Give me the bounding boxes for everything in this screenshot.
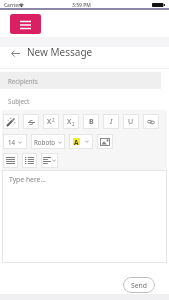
staticText: Subject [8, 97, 30, 105]
staticText: 14 [8, 138, 16, 146]
staticText: Send [131, 281, 147, 290]
staticText: 2 [72, 121, 75, 127]
button[interactable]: Subject [0, 93, 161, 108]
staticText: S [29, 117, 34, 127]
button[interactable]: Type here... [2, 170, 167, 263]
staticText: Type here... [9, 175, 46, 184]
staticText: X [47, 117, 52, 127]
staticText: Carrier [4, 2, 21, 9]
button[interactable]: Link [143, 114, 159, 129]
staticText: U [128, 117, 134, 127]
button[interactable]: Bold [83, 114, 99, 129]
staticText: 3:59 PM [72, 2, 91, 9]
button[interactable]: Underline [123, 114, 139, 129]
button[interactable]: Strikethrough [23, 114, 39, 129]
staticText: Recipients [8, 77, 38, 85]
button[interactable]: Superscript [43, 114, 59, 129]
staticText: Roboto [34, 138, 56, 146]
button[interactable]: Send [123, 277, 155, 293]
button[interactable]: Numbered list [22, 153, 37, 168]
staticText: I [110, 117, 113, 127]
button[interactable]: Insert image [97, 134, 113, 149]
button[interactable]: Italic [103, 114, 119, 129]
staticText: 2 [52, 117, 55, 123]
button[interactable]: Recipients [0, 72, 161, 89]
button[interactable]: Back [9, 47, 22, 60]
button[interactable]: Roboto [31, 134, 65, 149]
button[interactable]: Subscript [63, 114, 79, 129]
staticText: A [74, 138, 79, 145]
staticText: New Message [27, 45, 93, 59]
button[interactable]: Bulleted list [3, 153, 18, 168]
staticText: X [67, 117, 72, 127]
button[interactable]: Highlight colour [69, 134, 93, 149]
button[interactable]: 14 [3, 134, 27, 149]
staticText: B [89, 117, 94, 127]
button[interactable]: Menu [10, 14, 41, 34]
button[interactable]: Align [41, 153, 58, 168]
button[interactable]: Clear formatting [3, 114, 19, 129]
